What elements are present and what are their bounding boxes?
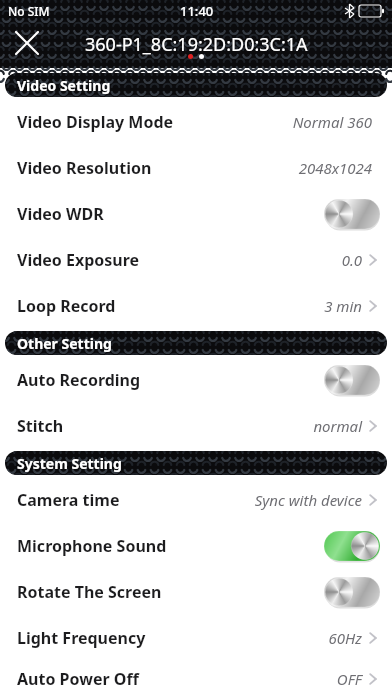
button[interactable]: Auto Power Off [0, 661, 392, 696]
button[interactable]: Light Frequency [0, 615, 392, 661]
staticText: Light Frequency [17, 627, 146, 649]
staticText: Camera time [17, 489, 120, 511]
staticText: 360-P1_8C:19:2D:D0:3C:1A [85, 32, 308, 57]
staticText: 11:40 [180, 2, 214, 20]
staticText: Auto Power Off [17, 668, 139, 690]
button[interactable]: Camera time [0, 477, 392, 523]
other: Open [366, 417, 380, 435]
staticText: normal [313, 416, 362, 436]
button[interactable]: Auto Recording [0, 357, 392, 403]
staticText: No SIM [8, 3, 50, 19]
staticText: Video Resolution [17, 157, 152, 179]
button[interactable]: Video Display Mode [0, 99, 392, 145]
button[interactable]: Microphone Sound [0, 523, 392, 569]
button[interactable]: Video Resolution [0, 145, 392, 191]
button[interactable]: Stitch [0, 403, 392, 449]
staticText: OFF [336, 669, 362, 689]
button[interactable]: Auto Recording [324, 365, 380, 395]
staticText: Video WDR [17, 203, 104, 225]
staticText: Rotate The Screen [17, 581, 162, 603]
staticText: 0.0 [341, 250, 362, 270]
staticText: Other Setting [17, 334, 112, 353]
button[interactable]: Video Exposure [0, 237, 392, 283]
staticText: Stitch [17, 415, 64, 437]
button[interactable]: Close [8, 24, 46, 62]
button[interactable]: Rotate The Screen [0, 569, 392, 615]
other: Open [366, 670, 380, 688]
staticText: Normal 360 [292, 112, 372, 132]
other: Open [366, 297, 380, 315]
staticText: Auto Recording [17, 369, 141, 391]
staticText: Loop Record [17, 295, 116, 317]
button[interactable]: Loop Record [0, 283, 392, 329]
staticText: Sync with device [254, 490, 362, 510]
staticText: System Setting [17, 454, 122, 473]
other: Open [366, 491, 380, 509]
staticText: Video Display Mode [17, 111, 174, 133]
button[interactable]: Microphone Sound [324, 531, 380, 561]
staticText: Microphone Sound [17, 535, 167, 557]
staticText: 2048x1024 [298, 158, 372, 178]
other: Open [366, 251, 380, 269]
button[interactable]: Video WDR [0, 191, 392, 237]
staticText: Video Exposure [17, 249, 140, 271]
button[interactable]: Video WDR [324, 199, 380, 229]
other: Open [366, 629, 380, 647]
button[interactable]: Rotate The Screen [324, 577, 380, 607]
staticText: 3 min [324, 296, 362, 316]
staticText: Video Setting [17, 76, 111, 95]
staticText: 60Hz [328, 628, 362, 648]
